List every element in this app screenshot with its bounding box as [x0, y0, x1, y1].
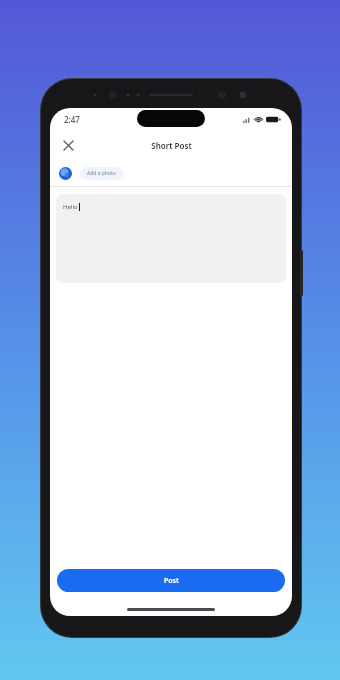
button[interactable]: Profile [59, 167, 72, 180]
staticText: Add a photo [87, 170, 116, 177]
staticText: Hello [63, 203, 78, 211]
button[interactable]: Post [57, 569, 285, 592]
staticText: 2:47 [64, 114, 80, 125]
button[interactable]: Add a photo [80, 167, 123, 180]
staticText: Short Post [151, 140, 192, 151]
staticText: Post [164, 576, 179, 586]
button[interactable]: Hello [56, 194, 286, 283]
button[interactable]: Close [56, 133, 80, 157]
